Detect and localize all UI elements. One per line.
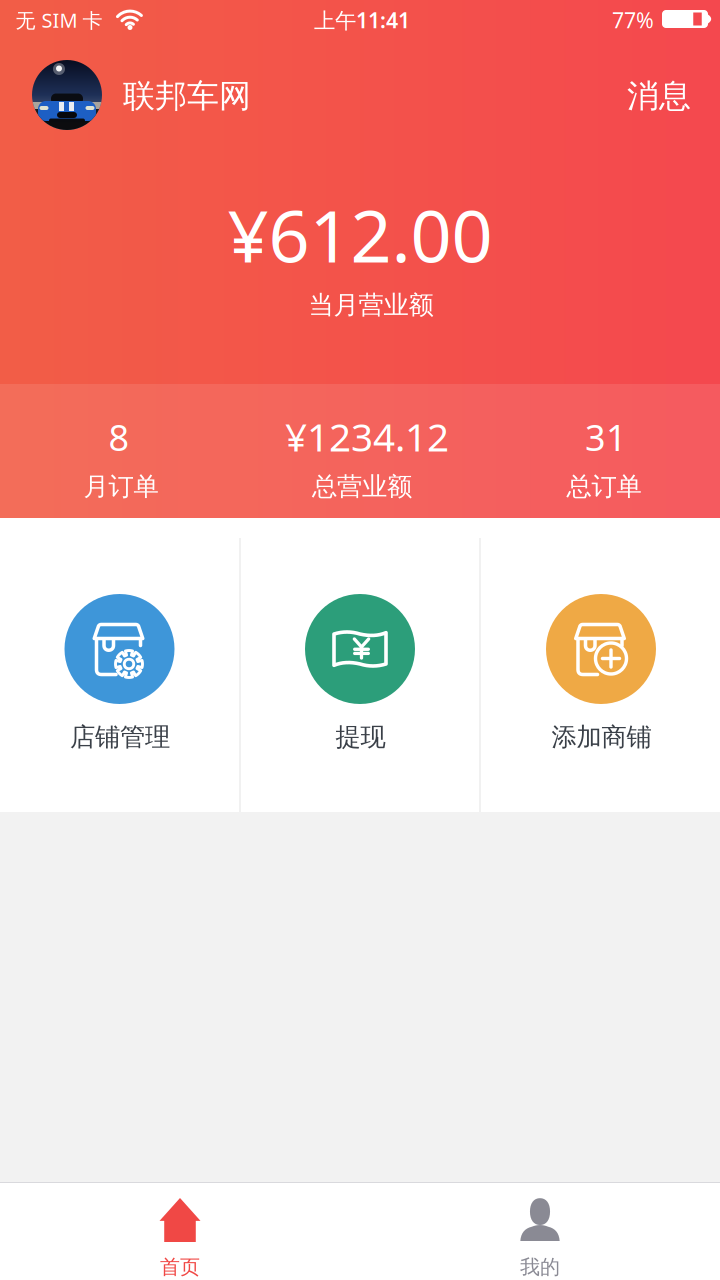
button[interactable]: 店铺管理 xyxy=(0,523,238,813)
staticText: 总营业额 xyxy=(312,471,412,502)
staticText: 消息 xyxy=(627,76,691,116)
staticText: 店铺管理 xyxy=(70,721,170,752)
button[interactable]: 消息 xyxy=(617,68,701,124)
staticText: ¥612.00 xyxy=(227,187,492,282)
staticText: 8 xyxy=(108,413,129,461)
staticText: 月订单 xyxy=(83,471,158,502)
staticText: 联邦车网 xyxy=(123,76,251,116)
button[interactable]: 首页 xyxy=(0,1183,360,1280)
staticText: 提现 xyxy=(335,721,385,752)
staticText: 31 xyxy=(585,413,627,461)
button[interactable]: 我的 xyxy=(360,1183,720,1280)
staticText: 总订单 xyxy=(566,471,641,502)
staticText: 当月营业额 xyxy=(308,289,433,320)
staticText: 77% xyxy=(612,6,654,34)
staticText: 首页 xyxy=(160,1255,200,1279)
staticText: ¥1234.12 xyxy=(285,411,449,462)
staticText: 上午11:41 xyxy=(314,6,410,34)
staticText: 无 SIM 卡 xyxy=(15,7,102,33)
button[interactable]: 提现 xyxy=(241,523,479,813)
staticText: 我的 xyxy=(520,1255,560,1279)
button[interactable]: 添加商铺 xyxy=(482,523,720,813)
staticText: 添加商铺 xyxy=(551,721,651,752)
